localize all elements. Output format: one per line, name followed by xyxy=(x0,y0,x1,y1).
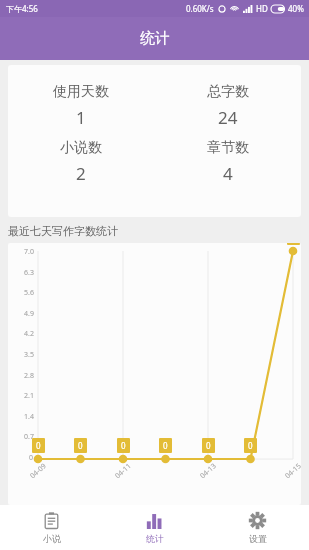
staticText: 统计 xyxy=(140,29,170,48)
staticText: 1 xyxy=(76,106,86,129)
staticText: 0 xyxy=(121,440,126,451)
staticText: 0.7 xyxy=(24,432,34,442)
staticText: 使用天数 xyxy=(53,83,109,101)
staticText: 0 xyxy=(248,440,253,451)
staticText: 4 xyxy=(223,162,233,185)
staticText: 设置 xyxy=(249,533,267,544)
staticText: 0 xyxy=(29,453,34,463)
staticText: 6.3 xyxy=(24,268,34,278)
other: 统计 xyxy=(146,512,163,529)
staticText: 总字数 xyxy=(207,83,249,101)
staticText: 04-09 xyxy=(28,461,49,481)
staticText: 0 xyxy=(78,440,83,451)
button[interactable]: 设置 xyxy=(206,505,309,550)
staticText: 04-11 xyxy=(113,461,134,481)
staticText: 24 xyxy=(218,106,238,129)
other: 小说 xyxy=(43,512,60,529)
staticText: 3.5 xyxy=(24,350,34,360)
staticText: 4.9 xyxy=(24,309,34,319)
staticText: 40% xyxy=(288,3,304,14)
staticText: 小说 xyxy=(43,533,61,544)
staticText: 04-15 xyxy=(283,461,301,481)
staticText: 小说数 xyxy=(60,139,102,157)
staticText: 2.1 xyxy=(24,391,34,401)
staticText: 0 xyxy=(206,440,211,451)
staticText: 下午4:56 xyxy=(6,3,38,14)
staticText: 2.8 xyxy=(24,371,34,381)
staticText: 7.0 xyxy=(24,247,34,257)
staticText: HD xyxy=(256,3,268,14)
staticText: 1.4 xyxy=(24,412,34,422)
staticText: 0.60K/s xyxy=(186,3,214,14)
button[interactable]: 小说 xyxy=(0,505,103,550)
staticText: 统计 xyxy=(146,533,164,544)
staticText: 4.2 xyxy=(24,329,34,339)
staticText: 最近七天写作字数统计 xyxy=(8,224,118,238)
staticText: 2 xyxy=(76,162,86,185)
button[interactable]: 使用天数 xyxy=(8,65,301,217)
staticText: 0 xyxy=(163,440,168,451)
staticText: 5.6 xyxy=(24,288,34,298)
staticText: 0 xyxy=(36,440,41,451)
staticText: 04-13 xyxy=(198,461,219,481)
button[interactable]: 统计 xyxy=(103,505,206,550)
staticText: 章节数 xyxy=(207,139,249,157)
other: 设置 xyxy=(249,512,266,529)
